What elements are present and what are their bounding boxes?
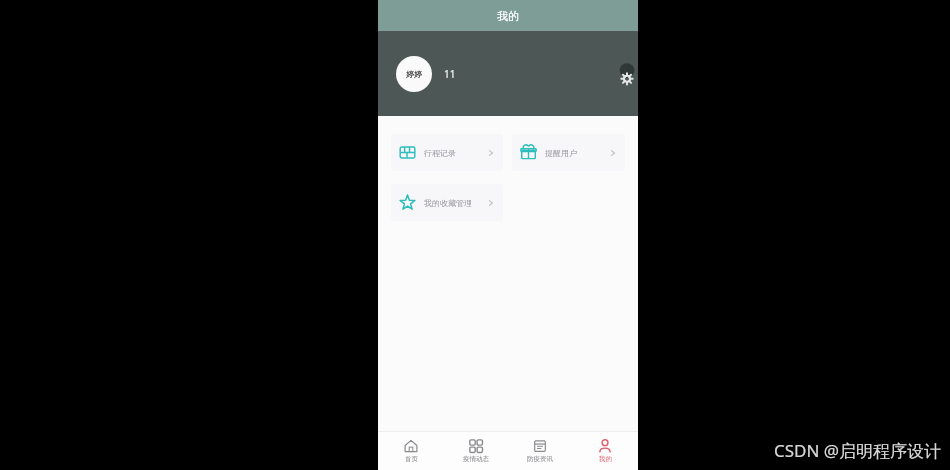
staticText: 11 bbox=[444, 67, 456, 81]
staticText: 防疫资讯 bbox=[527, 455, 553, 463]
staticText: 行程记录 bbox=[424, 148, 487, 158]
staticText: 提醒用户 bbox=[545, 148, 609, 158]
button[interactable]: 我的 bbox=[574, 432, 636, 470]
staticText: 我的 bbox=[497, 9, 519, 23]
staticText: 婷婷 bbox=[406, 69, 422, 79]
button[interactable]: 提醒用户 bbox=[512, 134, 625, 171]
staticText: 我的 bbox=[599, 455, 612, 463]
button[interactable]: 设置 bbox=[616, 63, 638, 85]
button[interactable]: 头像 bbox=[396, 56, 432, 92]
staticText: 首页 bbox=[405, 455, 418, 463]
button[interactable]: 我的收藏管理 bbox=[391, 184, 503, 221]
staticText: CSDN @启明程序设计 bbox=[774, 439, 942, 462]
staticText: 我的收藏管理 bbox=[424, 198, 487, 208]
button[interactable]: 行程记录 bbox=[391, 134, 503, 171]
button[interactable]: 首页 bbox=[380, 432, 442, 470]
button[interactable]: 疫情动态 bbox=[445, 432, 507, 470]
button[interactable]: 防疫资讯 bbox=[509, 432, 571, 470]
staticText: 疫情动态 bbox=[463, 455, 489, 463]
